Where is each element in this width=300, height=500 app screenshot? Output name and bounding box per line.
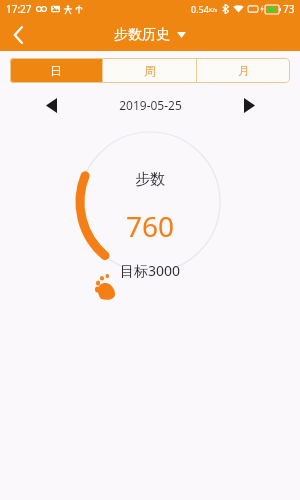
button[interactable]: 步数历史 — [114, 26, 186, 44]
staticText: 日 — [50, 63, 62, 78]
staticText: 月 — [238, 63, 250, 78]
staticText: 17:27 — [6, 2, 32, 16]
button[interactable]: 周 — [103, 58, 196, 83]
button[interactable]: Previous day — [38, 92, 64, 118]
staticText: 目标3000 — [120, 261, 181, 280]
staticText: K/s — [209, 6, 218, 13]
staticText: 步数 — [135, 170, 165, 189]
button[interactable]: Next day — [236, 92, 262, 118]
staticText: 2019-05-25 — [119, 97, 182, 113]
staticText: 73 — [283, 2, 295, 16]
staticText: 760 — [126, 207, 175, 245]
button[interactable]: 月 — [197, 58, 290, 83]
staticText: 步数历史 — [114, 26, 170, 44]
staticText: 0.54 — [191, 3, 209, 15]
staticText: 周 — [144, 63, 156, 78]
button[interactable]: 日 — [10, 58, 102, 83]
button[interactable]: Back — [0, 18, 36, 51]
